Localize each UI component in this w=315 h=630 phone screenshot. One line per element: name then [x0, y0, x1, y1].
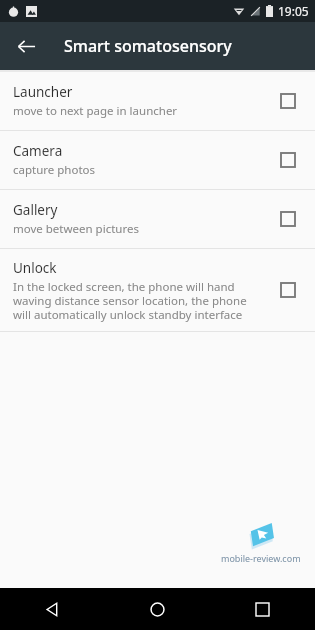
staticText: capture photos [13, 162, 96, 178]
staticText: mobile-review.com [221, 552, 301, 564]
button[interactable]: Back [0, 588, 105, 630]
staticText: move between pictures [13, 221, 139, 237]
staticText: In the locked screen, the phone will han… [13, 279, 261, 322]
button[interactable]: Back [6, 26, 46, 66]
button[interactable]: Unlock [0, 249, 315, 331]
staticText: Gallery [13, 201, 58, 219]
button[interactable]: Gallery [0, 190, 315, 248]
button[interactable]: Toggle Unlock [271, 273, 305, 307]
staticText: Camera [13, 142, 63, 160]
button[interactable]: Toggle Gallery [271, 202, 305, 236]
staticText: move to next page in launcher [13, 103, 178, 119]
button[interactable]: Recent apps [210, 588, 315, 630]
staticText: Smart somatosensory [64, 35, 232, 57]
button[interactable]: Camera [0, 131, 315, 189]
button[interactable]: Launcher [0, 72, 315, 130]
button[interactable]: Toggle Camera [271, 143, 305, 177]
button[interactable]: Toggle Launcher [271, 84, 305, 118]
staticText: Unlock [13, 259, 57, 277]
button[interactable]: Home [105, 588, 210, 630]
staticText: 19:05 [278, 3, 309, 19]
staticText: Launcher [13, 83, 73, 101]
